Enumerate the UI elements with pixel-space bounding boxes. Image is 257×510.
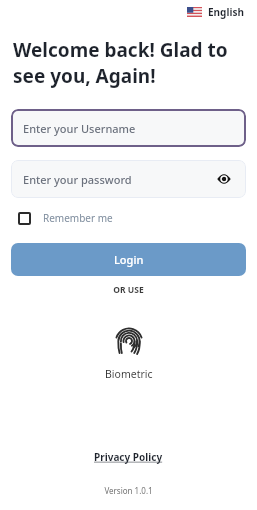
staticText: Enter your password <box>23 172 132 187</box>
staticText: OR USE <box>0 284 257 296</box>
staticText: Welcome back! Glad to see you, Again! <box>13 37 228 89</box>
button[interactable]: Enter your Username <box>11 109 246 147</box>
button[interactable]: Privacy Policy <box>88 448 169 466</box>
staticText: Remember me <box>43 211 113 225</box>
staticText: Login <box>114 252 144 267</box>
staticText: Enter your Username <box>23 121 136 136</box>
button[interactable]: Remember me <box>14 207 117 229</box>
button[interactable]: English <box>185 3 246 21</box>
staticText: Version 1.0.1 <box>0 485 257 496</box>
button[interactable]: Biometric <box>95 322 163 385</box>
button[interactable]: Login <box>11 243 246 276</box>
button[interactable]: Enter your password <box>11 160 246 198</box>
staticText: Biometric <box>105 367 153 381</box>
staticText: English <box>208 5 244 19</box>
button[interactable]: Show password <box>214 169 234 189</box>
